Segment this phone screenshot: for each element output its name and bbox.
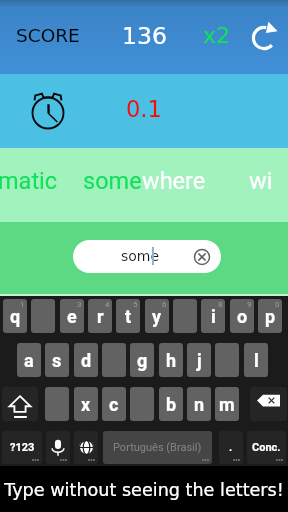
staticText: y [152,306,162,327]
staticText: c [109,394,119,415]
staticText: 3 [77,300,82,309]
button[interactable]: i [201,299,225,333]
button[interactable]: j [187,343,211,377]
button[interactable]: x [74,387,98,421]
staticText: h [166,350,177,371]
button[interactable] [130,387,154,421]
staticText: ?123 [10,441,35,454]
staticText: 5 [133,300,138,309]
staticText: Type without seeing the letters! [4,480,284,500]
staticText: wi [249,167,273,195]
staticText: 136 [122,22,167,49]
button[interactable]: some [73,240,221,273]
button[interactable]: b [159,387,183,421]
button[interactable] [215,343,239,377]
staticText: t [125,306,132,327]
button[interactable]: g [130,343,154,377]
button[interactable]: Restart round [246,16,282,52]
button[interactable]: o [230,299,254,333]
staticText: j [197,350,202,371]
staticText: a [24,350,34,371]
button[interactable]: m [215,387,239,421]
staticText: 9 [247,300,252,309]
staticText: matic [0,167,58,195]
staticText: some [83,167,142,195]
button[interactable]: p [258,299,282,333]
staticText: d [81,350,92,371]
button[interactable]: d [74,343,98,377]
staticText: r [97,306,104,327]
button[interactable] [173,299,197,333]
staticText: p [265,306,276,327]
button[interactable]: Conc. [247,431,286,464]
button[interactable]: y [145,299,169,333]
button[interactable]: n [187,387,211,421]
staticText: Português (Brasil) [113,441,202,454]
button[interactable]: . [219,431,243,464]
staticText: 1 [20,300,25,309]
staticText: . [229,441,233,454]
button[interactable]: t [116,299,140,333]
button[interactable]: ?123 [2,431,42,464]
button[interactable]: q [3,299,27,333]
staticText: 4 [105,300,110,309]
staticText: 8 [218,300,223,309]
staticText: 0 [275,300,280,309]
staticText: b [166,394,177,415]
button[interactable]: Clear text [192,247,212,267]
staticText: g [137,350,148,371]
staticText: e [67,306,77,327]
staticText: some [121,248,160,264]
staticText: x2 [203,23,231,49]
staticText: where [142,167,206,195]
button[interactable]: Voice input [46,431,70,464]
button[interactable]: h [159,343,183,377]
staticText: SCORE [16,25,80,47]
staticText: l [254,350,259,371]
button[interactable]: l [244,343,268,377]
staticText: 0.1 [126,96,162,122]
staticText: q [10,306,21,327]
button[interactable]: Backspace [250,387,287,421]
button[interactable]: Português (Brasil) [103,431,212,464]
staticText: s [52,350,62,371]
staticText: x [81,394,91,415]
button[interactable] [102,343,126,377]
button[interactable]: r [88,299,112,333]
button[interactable]: Shift [2,387,38,421]
button[interactable] [31,299,55,333]
staticText: m [219,394,235,415]
staticText: i [211,306,216,327]
button[interactable] [45,387,69,421]
button[interactable]: e [60,299,84,333]
staticText: Conc. [252,441,281,454]
button[interactable]: c [102,387,126,421]
staticText: n [194,394,205,415]
button[interactable]: s [45,343,69,377]
staticText: 6 [162,300,167,309]
staticText: o [237,306,248,327]
button[interactable]: Change input language [74,431,98,464]
button[interactable]: a [17,343,41,377]
